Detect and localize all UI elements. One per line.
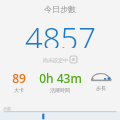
staticText: 步數 xyxy=(3,106,11,111)
button[interactable]: 89 xyxy=(0,70,38,96)
staticText: 活躍時間 xyxy=(50,87,70,93)
staticText: 4857 xyxy=(25,17,96,48)
button[interactable]: 尚未設定中 xyxy=(41,55,79,64)
staticText: 尚未設定中 xyxy=(43,57,68,63)
staticText: 今日步數 xyxy=(44,4,76,14)
button[interactable] xyxy=(0,111,120,120)
button[interactable]: 0h 43m xyxy=(38,70,82,96)
button[interactable]: 4857 xyxy=(0,17,120,48)
staticText: 步長 xyxy=(96,85,106,91)
button[interactable]: Step length xyxy=(82,70,120,96)
other: Settings xyxy=(70,56,77,63)
staticText: 大卡 xyxy=(14,87,24,93)
staticText: 0h 43m xyxy=(39,70,82,86)
staticText: 89 xyxy=(12,70,26,86)
